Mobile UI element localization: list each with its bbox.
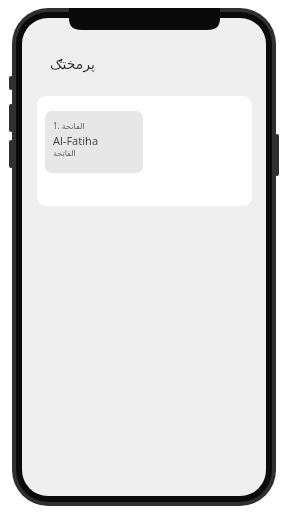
staticText: 1. الفاتحة xyxy=(53,120,85,131)
staticText: Al-Fatiha xyxy=(53,133,99,148)
staticText: الفاتحة xyxy=(53,149,76,158)
staticText: پرمختګ xyxy=(50,56,95,72)
button[interactable]: 1. الفاتحة xyxy=(37,96,252,206)
button[interactable]: 1. الفاتحة xyxy=(45,111,143,173)
